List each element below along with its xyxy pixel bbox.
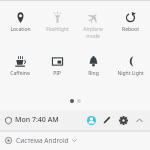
staticText: Airplane mode [76, 26, 110, 40]
staticText: Mon 7:40 AM [15, 115, 59, 125]
staticText: Система Android [16, 136, 69, 145]
button[interactable]: Ring [76, 54, 110, 77]
staticText: Location [10, 26, 31, 33]
button[interactable]: Airplane mode [76, 10, 110, 40]
button[interactable]: Collapse [132, 113, 146, 127]
button[interactable]: Night Light [113, 54, 147, 77]
staticText: PIP [53, 70, 61, 77]
button[interactable]: Flashlight [40, 10, 74, 33]
staticText: Reboot [122, 26, 139, 33]
button[interactable]: Caffeine [3, 54, 37, 77]
button[interactable]: Edit [100, 113, 114, 127]
button[interactable]: Reboot [113, 10, 147, 33]
staticText: Caffeine [10, 70, 30, 77]
button[interactable]: Система Android [5, 136, 77, 145]
button[interactable]: Settings [116, 113, 130, 127]
button[interactable]: PIP [40, 54, 74, 77]
staticText: Flashlight [46, 26, 69, 33]
button[interactable]: Mon 7:40 AM [5, 112, 59, 128]
button[interactable]: User account [84, 113, 98, 127]
staticText: Night Light [117, 70, 144, 77]
button[interactable]: Location [3, 10, 37, 33]
staticText: Ring [88, 70, 99, 77]
